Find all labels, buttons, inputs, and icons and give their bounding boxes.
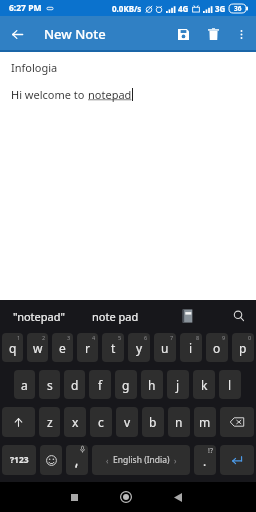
button[interactable]: f — [89, 370, 111, 399]
button[interactable]: z — [39, 407, 60, 437]
staticText: 6 — [144, 334, 148, 341]
button[interactable]: t — [102, 333, 124, 362]
button[interactable]: d — [64, 370, 85, 399]
staticText: f — [98, 377, 103, 393]
staticText: 9 — [222, 334, 226, 341]
staticText: 0 — [248, 334, 252, 341]
staticText: t — [111, 340, 116, 356]
staticText: Infologia — [11, 60, 58, 75]
staticText: English (India) — [113, 454, 170, 466]
button[interactable]: Clipboard — [153, 300, 221, 332]
button[interactable]: u — [154, 333, 176, 362]
button[interactable]: ‹ — [92, 445, 190, 475]
button[interactable]: !? — [194, 445, 216, 475]
staticText: › — [174, 455, 177, 466]
button[interactable] — [40, 445, 62, 475]
staticText: 4G — [178, 3, 189, 14]
staticText: o — [213, 340, 221, 356]
staticText: d — [71, 377, 79, 393]
staticText: r — [85, 340, 90, 356]
button[interactable]: Save — [168, 16, 198, 52]
button[interactable]: q — [2, 333, 23, 362]
staticText: "notepad" — [13, 309, 65, 324]
button[interactable]: w — [27, 333, 48, 362]
staticText: u — [161, 340, 169, 356]
staticText: p — [239, 340, 247, 356]
staticText: 3 — [67, 334, 71, 341]
button[interactable]: e — [52, 333, 73, 362]
staticText: l — [228, 377, 232, 393]
button[interactable]: s — [39, 370, 60, 399]
button[interactable]: g — [115, 370, 137, 399]
button[interactable]: Search — [221, 300, 256, 332]
staticText: g — [122, 377, 130, 393]
button[interactable]: Home — [111, 482, 141, 512]
button[interactable]: i — [180, 333, 202, 362]
button[interactable]: Recent apps — [59, 482, 89, 512]
button[interactable]: c — [90, 407, 112, 437]
button[interactable] — [220, 407, 254, 437]
button[interactable]: o — [206, 333, 228, 362]
staticText: v — [124, 414, 131, 430]
staticText: 0.0KB/s — [112, 3, 142, 14]
staticText: w — [33, 340, 43, 356]
staticText: New Note — [44, 25, 106, 43]
staticText: 7 — [170, 334, 174, 341]
staticText: note pad — [92, 309, 139, 324]
button[interactable]: n — [168, 407, 190, 437]
button[interactable]: l — [219, 370, 241, 399]
button[interactable] — [220, 445, 254, 475]
staticText: Hi welcome to — [11, 87, 88, 102]
button[interactable]: p — [232, 333, 254, 362]
staticText: z — [47, 414, 53, 430]
staticText: 36 — [234, 4, 242, 13]
button[interactable]: a — [14, 370, 35, 399]
staticText: 2 — [42, 334, 46, 341]
button[interactable]: h — [141, 370, 163, 399]
button[interactable]: v — [116, 407, 138, 437]
staticText: n — [175, 414, 183, 430]
button[interactable]: m — [194, 407, 216, 437]
staticText: h — [148, 377, 156, 393]
staticText: e — [59, 340, 66, 356]
staticText: . — [203, 453, 207, 469]
staticText: s — [47, 377, 53, 393]
button[interactable]: More options — [228, 16, 254, 52]
button[interactable]: note pad — [78, 300, 153, 332]
button[interactable]: y — [128, 333, 150, 362]
staticText: i — [189, 340, 193, 356]
staticText: 6:27 PM — [9, 2, 42, 14]
staticText: 3G — [215, 3, 226, 14]
button[interactable]: Delete — [198, 16, 228, 52]
staticText: x — [72, 414, 79, 430]
staticText: !? — [208, 446, 213, 456]
staticText: 5 — [118, 334, 122, 341]
staticText: y — [136, 340, 143, 356]
staticText: ?123 — [10, 454, 29, 466]
button[interactable]: x — [64, 407, 86, 437]
button[interactable]: "notepad" — [0, 300, 78, 332]
staticText: , — [75, 453, 79, 469]
staticText: k — [201, 377, 208, 393]
staticText: 4 — [92, 334, 96, 341]
staticText: notepad — [88, 87, 132, 102]
staticText: c — [98, 414, 104, 430]
button[interactable]: , — [66, 445, 88, 475]
button[interactable]: b — [142, 407, 164, 437]
staticText: ‹ — [106, 455, 109, 466]
button[interactable]: ?123 — [2, 445, 36, 475]
button[interactable]: j — [167, 370, 189, 399]
staticText: j — [176, 377, 180, 393]
staticText: 1 — [17, 334, 21, 341]
button[interactable]: k — [193, 370, 215, 399]
staticText: a — [21, 377, 28, 393]
staticText: , — [75, 452, 79, 468]
staticText: q — [9, 340, 17, 356]
button[interactable]: Back — [163, 482, 193, 512]
button[interactable] — [2, 407, 35, 437]
button[interactable]: r — [77, 333, 98, 362]
button[interactable]: Navigate up — [0, 16, 34, 52]
staticText: 8 — [196, 334, 200, 341]
staticText: m — [199, 414, 211, 430]
staticText: b — [149, 414, 157, 430]
